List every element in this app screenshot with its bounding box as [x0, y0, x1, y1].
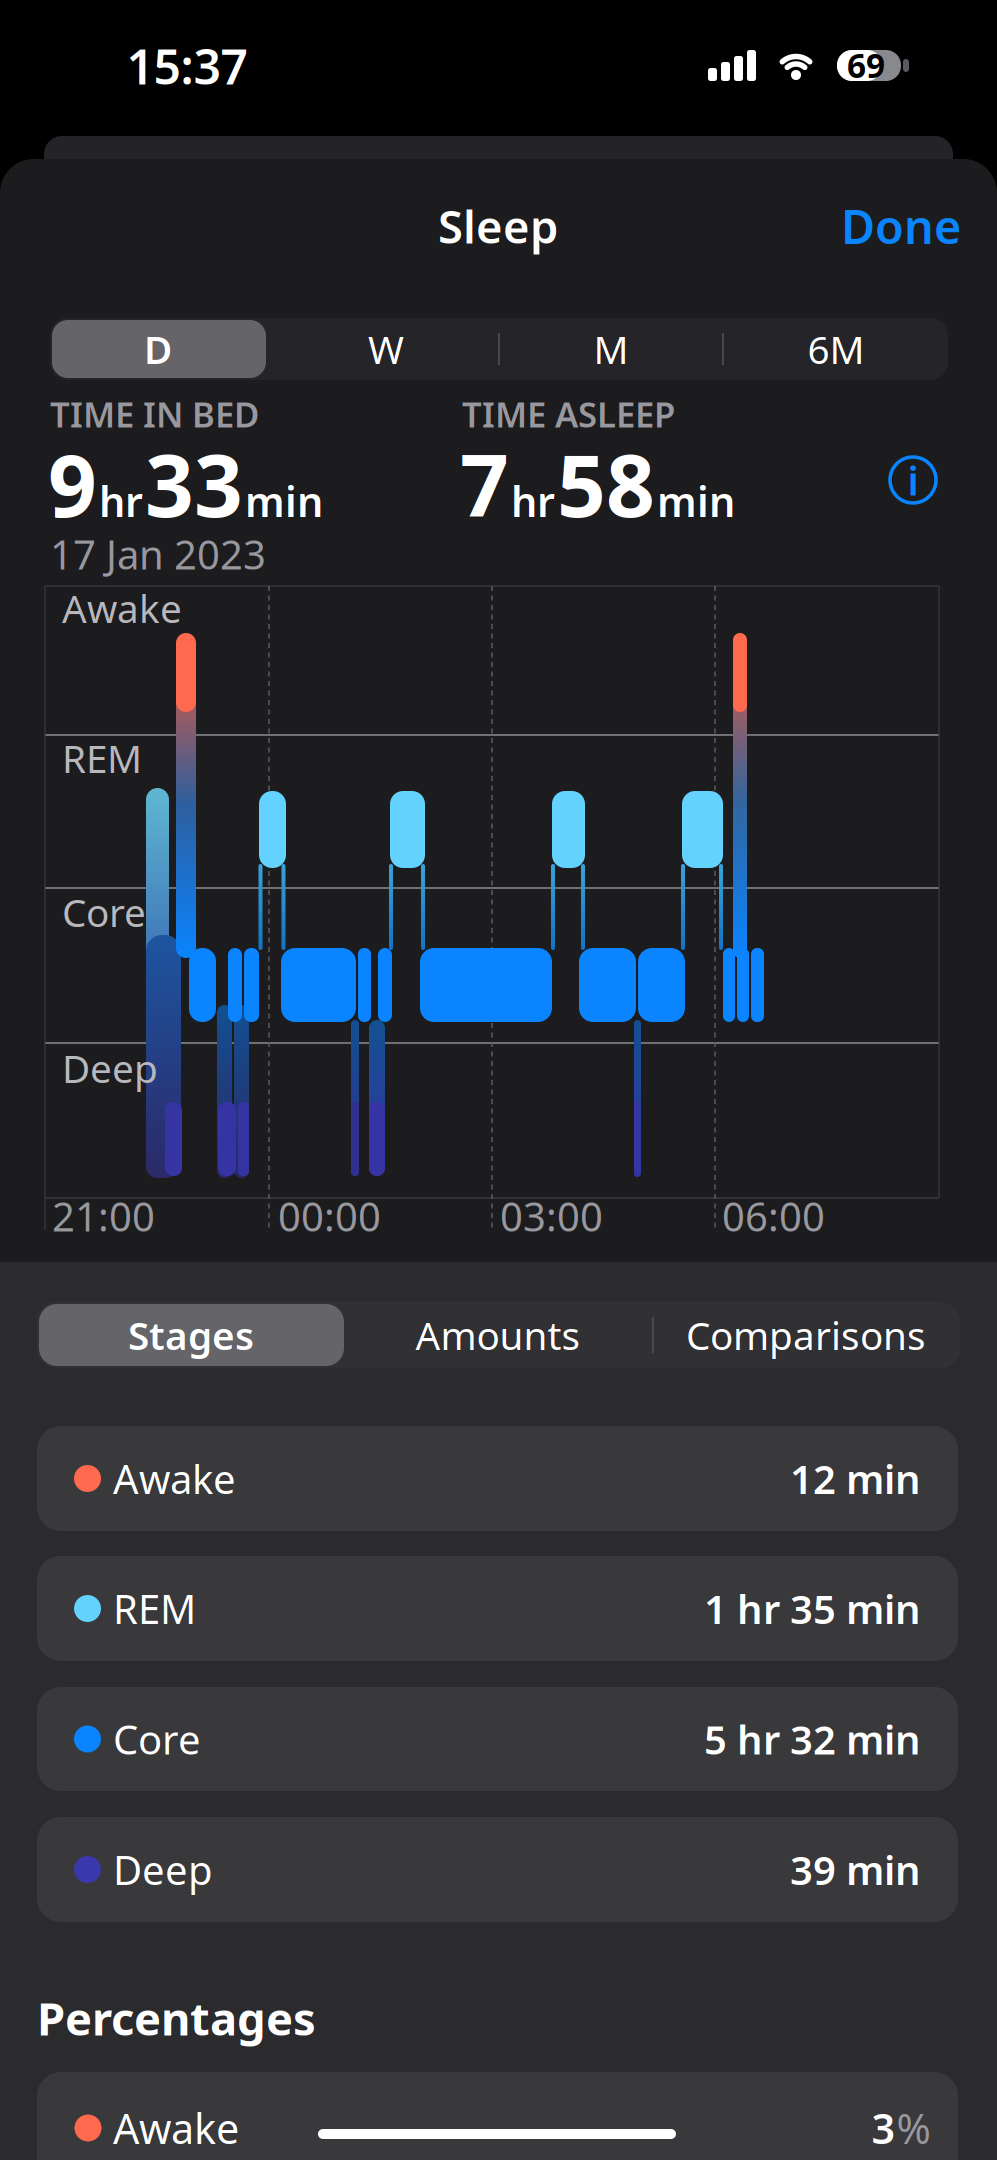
staticText: 17 Jan 2023 [50, 527, 266, 580]
staticText: Awake [113, 2101, 239, 2155]
staticText: Deep [62, 1042, 158, 1094]
staticText: 39 min [790, 1843, 921, 1896]
staticText: % [896, 2101, 930, 2155]
staticText: Deep [113, 1843, 213, 1896]
staticText: 03:00 [500, 1189, 603, 1242]
staticText: 69 [847, 43, 885, 87]
staticText: 7 [460, 427, 509, 541]
staticText: Done [841, 195, 961, 257]
staticText: 21:00 [52, 1189, 155, 1242]
staticText: W [368, 323, 404, 375]
staticText: Amounts [415, 1309, 580, 1361]
staticText: Percentages [37, 1988, 316, 2048]
staticText: 6M [807, 323, 864, 375]
staticText: 58 [557, 427, 655, 541]
button[interactable]: Comparisons [656, 1304, 956, 1366]
staticText: 33 [145, 427, 243, 541]
staticText: Awake [113, 1452, 236, 1505]
staticText: Stages [128, 1309, 254, 1361]
staticText: 3 [871, 2101, 895, 2155]
staticText: Awake [62, 582, 182, 634]
staticText: hr [99, 474, 143, 528]
staticText: REM [62, 732, 142, 784]
staticText: 5 hr 32 min [704, 1712, 921, 1765]
staticText: 1 hr 35 min [704, 1582, 921, 1635]
staticText: min [657, 474, 735, 528]
staticText: hr [511, 474, 555, 528]
button[interactable]: 6M [726, 320, 946, 378]
staticText: 9 [48, 427, 97, 541]
staticText: REM [113, 1582, 196, 1635]
button[interactable]: D [48, 320, 268, 378]
staticText: 15:37 [126, 34, 247, 98]
staticText: TIME IN BED [50, 391, 259, 437]
staticText: Comparisons [686, 1309, 926, 1361]
button[interactable]: M [501, 320, 721, 378]
staticText: TIME ASLEEP [462, 391, 675, 437]
button[interactable]: Core [37, 1687, 958, 1791]
staticText: 00:00 [278, 1189, 381, 1242]
button[interactable]: Stages [41, 1304, 341, 1366]
button[interactable]: Awake [37, 1426, 958, 1531]
button[interactable]: Amounts [348, 1304, 648, 1366]
button[interactable]: Done [841, 195, 961, 257]
button[interactable]: Awake [37, 2072, 958, 2160]
staticText: 06:00 [722, 1189, 825, 1242]
staticText: 12 min [790, 1452, 921, 1505]
button[interactable]: i [888, 455, 938, 505]
staticText: Sleep [438, 196, 558, 256]
staticText: M [593, 323, 628, 375]
button[interactable]: REM [37, 1556, 958, 1661]
button[interactable]: Deep [37, 1817, 958, 1922]
staticText: D [144, 323, 172, 375]
staticText: i [907, 453, 918, 506]
staticText: Core [113, 1712, 201, 1765]
staticText: min [245, 474, 323, 528]
staticText: Core [62, 886, 146, 938]
button[interactable]: W [276, 320, 496, 378]
